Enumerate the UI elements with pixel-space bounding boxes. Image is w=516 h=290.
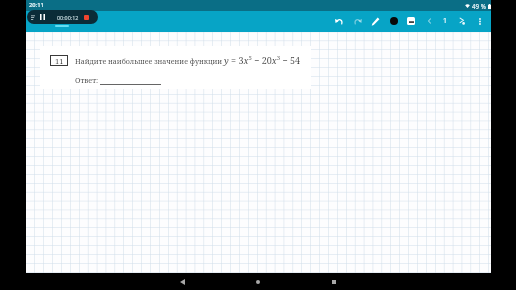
staticText: 20:11: [29, 1, 44, 9]
staticText: Ответ:: [75, 75, 99, 85]
button[interactable]: Pen: [367, 11, 384, 31]
button[interactable]: Stop recording: [84, 15, 89, 20]
button[interactable]: Recent apps: [321, 273, 347, 290]
staticText: 00:00:12: [57, 14, 79, 21]
button[interactable]: Add page: [454, 11, 471, 31]
button[interactable]: Undo: [330, 11, 347, 31]
staticText: 49 %: [472, 2, 486, 10]
button[interactable]: Back: [169, 273, 195, 290]
button[interactable]: Eraser: [402, 11, 419, 31]
button[interactable]: Previous page: [421, 11, 438, 31]
staticText: 1: [443, 16, 448, 26]
button[interactable]: Screen recorder controls: [27, 10, 98, 24]
button[interactable]: Redo: [349, 11, 366, 31]
button[interactable]: Colour: [385, 11, 402, 31]
button[interactable]: More options: [471, 11, 488, 31]
staticText: 11: [55, 56, 64, 66]
button[interactable]: Page number: [437, 11, 454, 31]
button[interactable]: Home: [245, 273, 271, 290]
staticText: Найдите наибольшее значение функции y = …: [75, 54, 300, 66]
